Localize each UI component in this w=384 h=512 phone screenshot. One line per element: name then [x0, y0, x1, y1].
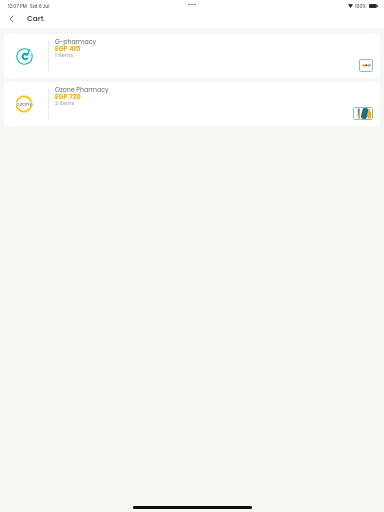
staticText: 2 items	[55, 99, 75, 106]
button[interactable]: G-pharmacy	[4, 34, 380, 78]
staticText: Cart	[27, 13, 44, 23]
staticText: 100%	[355, 3, 367, 9]
button[interactable]: Back	[4, 12, 18, 26]
staticText: Ozone Pharmacy	[55, 85, 109, 94]
staticText: 12:07 PM	[8, 3, 27, 9]
staticText: 1 items	[55, 51, 74, 58]
button[interactable]: ozone	[4, 82, 380, 126]
staticText: EGP 720	[55, 92, 81, 101]
staticText: EGP 415	[55, 44, 81, 53]
staticText: G-pharmacy	[55, 37, 97, 46]
staticText: ozone	[16, 100, 33, 108]
staticText: Sat 6 Jul	[30, 3, 50, 9]
